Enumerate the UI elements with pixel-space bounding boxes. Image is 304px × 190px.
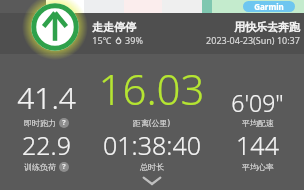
staticText: 平均配速 xyxy=(242,118,274,128)
button[interactable]: Help xyxy=(59,162,69,172)
staticText: 用快乐去奔跑 xyxy=(234,20,300,34)
staticText: 6'09" xyxy=(231,87,284,118)
button[interactable]: 走走停停 xyxy=(92,20,143,46)
staticText: 训练负荷 xyxy=(24,162,56,172)
staticText: ? xyxy=(62,162,66,172)
staticText: 39% xyxy=(125,34,143,46)
staticText: 144 xyxy=(236,128,279,162)
staticText: ? xyxy=(62,118,66,128)
button[interactable]: 用快乐去奔跑 xyxy=(186,20,300,46)
button[interactable]: 144 xyxy=(236,128,279,172)
button[interactable]: App logo xyxy=(22,0,88,60)
button[interactable]: Scroll down xyxy=(141,175,163,187)
button[interactable]: 6'09" xyxy=(231,87,284,128)
staticText: 01:38:40 xyxy=(103,128,201,162)
staticText: 平均心率 xyxy=(242,162,274,172)
button[interactable]: 22.9 xyxy=(22,128,71,172)
staticText: 15℃ xyxy=(92,34,112,46)
staticText: 2023-04-23(Sun) 10:37 xyxy=(206,34,300,46)
button[interactable]: 01:38:40 xyxy=(103,128,201,172)
staticText: 41.4 xyxy=(17,77,76,118)
staticText: 走走停停 xyxy=(92,20,136,34)
button[interactable]: 41.4 xyxy=(17,77,76,128)
staticText: 总时长 xyxy=(140,162,164,172)
staticText: Garmin xyxy=(254,1,284,12)
button[interactable]: 16.03 xyxy=(98,60,205,128)
staticText: 16.03 xyxy=(98,60,205,117)
button[interactable]: Help xyxy=(59,118,69,128)
button[interactable]: Garmin xyxy=(243,1,295,12)
staticText: 距离(公里) xyxy=(133,117,170,128)
staticText: 22.9 xyxy=(22,128,71,162)
staticText: 即时跑力 xyxy=(24,118,56,128)
